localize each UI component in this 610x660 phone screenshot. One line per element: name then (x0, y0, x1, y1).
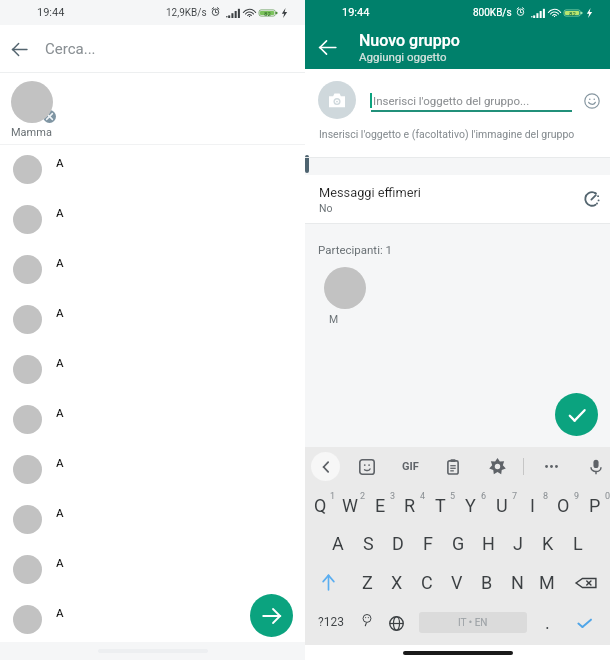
button[interactable]: A (0, 395, 305, 445)
button[interactable]: S (353, 524, 383, 563)
button[interactable]: A (0, 295, 305, 345)
staticText: R (404, 495, 416, 516)
staticText: Messaggi effimeri (319, 185, 421, 200)
staticText: 4 (420, 491, 426, 502)
button[interactable]: I (517, 486, 548, 524)
staticText: 7 (512, 491, 518, 502)
button[interactable]: Appunti (439, 453, 466, 480)
button[interactable]: Impostazioni (484, 453, 511, 480)
staticText: 3 (390, 491, 396, 502)
button[interactable]: GIF (396, 453, 424, 480)
staticText: Nuovo gruppo (359, 31, 460, 50)
staticText: S (363, 533, 374, 554)
button[interactable]: H (473, 524, 503, 563)
staticText: 5 (450, 491, 456, 502)
button[interactable]: Messaggi effimeri (305, 175, 610, 223)
button[interactable]: G (443, 524, 473, 563)
button[interactable]: Simboli (308, 606, 354, 638)
button[interactable]: A (0, 445, 305, 495)
button[interactable]: Microfono (582, 453, 609, 480)
button[interactable]: V (442, 563, 472, 602)
button[interactable]: Punto (533, 606, 561, 638)
button[interactable]: Indietro (305, 25, 349, 69)
button[interactable]: Conferma (555, 393, 598, 436)
button[interactable]: Chiudi tastiera (311, 452, 340, 481)
button[interactable]: F (413, 524, 443, 563)
staticText: W (342, 495, 358, 516)
staticText: Inserisci l'oggetto e (facoltativo) l'im… (319, 128, 575, 140)
staticText: E (375, 495, 386, 516)
staticText: A (332, 533, 344, 554)
button[interactable]: Indietro (0, 30, 38, 68)
staticText: L (573, 533, 583, 554)
staticText: Z (362, 572, 373, 593)
staticText: M (539, 572, 555, 593)
staticText: 8 (543, 491, 549, 502)
button[interactable]: J (503, 524, 533, 563)
staticText: A (56, 206, 64, 219)
button[interactable]: A (0, 595, 305, 642)
button[interactable]: Invio (569, 609, 600, 637)
staticText: U (496, 495, 508, 516)
staticText: X (391, 572, 403, 593)
staticText: A (56, 156, 64, 169)
staticText: Y (465, 495, 476, 516)
staticText: I (530, 495, 535, 516)
button[interactable]: K (533, 524, 563, 563)
staticText: ?123 (318, 615, 344, 629)
button[interactable]: M (532, 563, 562, 602)
staticText: G (452, 533, 465, 554)
button[interactable]: E (365, 486, 395, 524)
button[interactable]: Spazio (419, 612, 527, 633)
staticText: Q (314, 495, 327, 516)
staticText: 6 (481, 491, 487, 502)
staticText: 19:44 (37, 6, 65, 19)
button[interactable]: A (0, 495, 305, 545)
button[interactable]: Avanti (250, 594, 293, 637)
button[interactable]: A (0, 195, 305, 245)
button[interactable]: B (472, 563, 502, 602)
staticText: 12,9KB/s (166, 7, 207, 19)
staticText: Aggiungi oggetto (359, 50, 447, 63)
staticText: 2 (360, 491, 366, 502)
button[interactable]: C (412, 563, 442, 602)
button[interactable]: Backspace (562, 563, 610, 602)
button[interactable]: Mamma (0, 73, 305, 115)
staticText: 1 (330, 491, 336, 502)
staticText: T (435, 495, 446, 516)
staticText: P (589, 495, 601, 516)
button[interactable]: D (383, 524, 413, 563)
staticText: . (545, 612, 550, 633)
button[interactable]: Maiuscole (305, 563, 352, 602)
button[interactable]: A (0, 345, 305, 395)
staticText: 19:44 (342, 6, 370, 19)
button[interactable]: U (486, 486, 517, 524)
staticText: A (56, 306, 64, 319)
button[interactable]: W (335, 486, 365, 524)
button[interactable]: Cambia lingua (381, 609, 411, 637)
button[interactable]: A (0, 545, 305, 595)
staticText: K (542, 533, 554, 554)
button[interactable]: L (563, 524, 593, 563)
button[interactable]: N (502, 563, 532, 602)
button[interactable]: A (0, 245, 305, 295)
button[interactable]: O (548, 486, 579, 524)
staticText: A (56, 406, 64, 419)
button[interactable]: Q (305, 486, 335, 524)
button[interactable]: Y (455, 486, 486, 524)
button[interactable]: Altro (538, 453, 565, 480)
staticText: Cerca... (45, 40, 96, 58)
button[interactable]: R (395, 486, 425, 524)
button[interactable]: X (382, 563, 412, 602)
button[interactable]: Emoji (353, 608, 381, 636)
button[interactable]: Aggiungi immagine (318, 81, 356, 119)
button[interactable]: Sticker (353, 453, 380, 480)
button[interactable]: A (322, 524, 353, 563)
staticText: 9 (574, 491, 580, 502)
button[interactable]: P (579, 486, 610, 524)
button[interactable]: Emoji (580, 89, 604, 113)
staticText: N (511, 572, 524, 593)
button[interactable]: Z (352, 563, 382, 602)
button[interactable]: A (0, 145, 305, 195)
button[interactable]: T (425, 486, 455, 524)
